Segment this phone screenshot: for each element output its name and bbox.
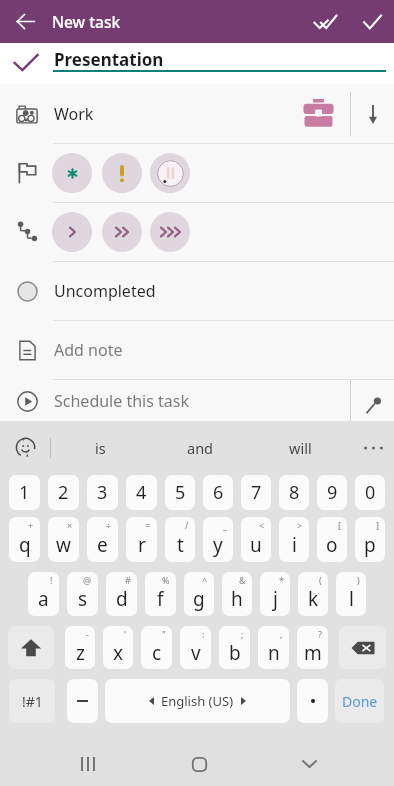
staticText: - bbox=[86, 628, 89, 640]
staticText: 6 bbox=[213, 480, 224, 505]
button[interactable]: Shift bbox=[8, 626, 54, 669]
staticText: k bbox=[308, 586, 319, 612]
staticText: 5 bbox=[175, 480, 186, 505]
button[interactable]: 0 bbox=[355, 475, 385, 510]
staticText: Uncompleted bbox=[54, 280, 156, 302]
button[interactable]: 6 bbox=[203, 475, 233, 510]
button[interactable]: : bbox=[180, 626, 211, 669]
button[interactable]: Complete all bbox=[303, 0, 347, 43]
button[interactable]: 2 bbox=[48, 475, 79, 510]
button[interactable]: , bbox=[258, 626, 289, 669]
button[interactable]: !#1 bbox=[9, 679, 55, 723]
button[interactable]: More suggestions bbox=[352, 421, 394, 474]
button[interactable]: 7 bbox=[241, 475, 271, 510]
staticText: 4 bbox=[136, 480, 147, 505]
button[interactable]: @ bbox=[67, 572, 98, 616]
button[interactable]: ' bbox=[103, 626, 133, 669]
button[interactable]: Progress level 3 bbox=[150, 212, 190, 252]
staticText: : bbox=[202, 628, 205, 640]
button[interactable]: * bbox=[260, 572, 290, 616]
staticText: o bbox=[326, 532, 338, 558]
button[interactable]: # bbox=[106, 572, 137, 616]
button[interactable]: > bbox=[279, 517, 309, 562]
button[interactable]: Home bbox=[169, 730, 229, 786]
button[interactable]: ; bbox=[219, 626, 250, 669]
staticText: u bbox=[250, 532, 262, 558]
button[interactable]: - bbox=[65, 626, 95, 669]
staticText: ( bbox=[319, 574, 322, 586]
button[interactable]: Recent apps bbox=[58, 730, 118, 786]
button[interactable]: [ bbox=[317, 517, 347, 562]
button[interactable]: Backspace bbox=[339, 626, 386, 669]
button[interactable]: Period bbox=[297, 679, 328, 723]
button[interactable]: Uncompleted bbox=[0, 262, 394, 320]
button[interactable]: 9 bbox=[317, 475, 347, 510]
button[interactable]: 3 bbox=[87, 475, 118, 510]
button[interactable]: ^ bbox=[184, 572, 214, 616]
button[interactable]: is bbox=[51, 421, 150, 474]
staticText: ! bbox=[50, 574, 53, 586]
staticText: ) bbox=[357, 574, 360, 586]
staticText: g bbox=[193, 586, 205, 612]
button[interactable]: will bbox=[250, 421, 350, 474]
button[interactable]: ÷ bbox=[87, 517, 118, 562]
button[interactable]: ] bbox=[355, 517, 385, 562]
staticText: 0 bbox=[365, 480, 376, 505]
button[interactable]: Done bbox=[335, 679, 384, 723]
staticText: > bbox=[297, 519, 303, 531]
button[interactable]: Back bbox=[6, 0, 44, 43]
staticText: Add note bbox=[54, 339, 123, 361]
staticText: l bbox=[349, 586, 354, 612]
staticText: r bbox=[138, 532, 146, 558]
button[interactable]: and bbox=[150, 421, 250, 474]
button[interactable]: = bbox=[126, 517, 157, 562]
button[interactable]: " bbox=[141, 626, 172, 669]
button[interactable]: + bbox=[9, 517, 40, 562]
button[interactable]: Space, English (US) bbox=[105, 679, 290, 723]
staticText: ' bbox=[124, 628, 127, 640]
button[interactable]: 1 bbox=[9, 475, 40, 510]
button[interactable]: Medium priority bbox=[102, 153, 142, 193]
button[interactable]: Low priority bbox=[52, 153, 92, 193]
staticText: t bbox=[177, 532, 184, 558]
staticText: a bbox=[38, 586, 49, 612]
staticText: Schedule this task bbox=[54, 390, 189, 412]
staticText: Work bbox=[54, 103, 94, 125]
button[interactable]: Work category icon bbox=[301, 98, 336, 130]
button[interactable]: Expand bbox=[351, 85, 394, 143]
button[interactable]: Add note bbox=[0, 321, 394, 379]
button[interactable]: Work bbox=[0, 85, 394, 143]
button[interactable]: Progress level 2 bbox=[102, 212, 142, 252]
staticText: New task bbox=[52, 11, 121, 32]
staticText: z bbox=[76, 640, 85, 666]
button[interactable]: Save bbox=[350, 0, 394, 43]
button[interactable]: _ bbox=[203, 517, 233, 562]
button[interactable]: / bbox=[165, 517, 195, 562]
staticText: ? bbox=[318, 628, 322, 640]
staticText: [ bbox=[338, 519, 341, 531]
button[interactable]: 8 bbox=[279, 475, 309, 510]
button[interactable]: ( bbox=[298, 572, 328, 616]
staticText: ; bbox=[241, 628, 244, 640]
button[interactable]: × bbox=[48, 517, 79, 562]
button[interactable]: Pin bbox=[350, 380, 394, 422]
button[interactable]: ) bbox=[336, 572, 366, 616]
button[interactable]: ! bbox=[28, 572, 59, 616]
button[interactable]: < bbox=[241, 517, 271, 562]
button[interactable]: Schedule this task bbox=[0, 380, 394, 422]
button[interactable]: % bbox=[145, 572, 176, 616]
staticText: ÷ bbox=[106, 519, 112, 531]
staticText: f bbox=[157, 586, 164, 612]
button[interactable]: Dash bbox=[67, 679, 98, 723]
button[interactable]: & bbox=[222, 572, 252, 616]
button[interactable]: Hide keyboard bbox=[279, 730, 339, 786]
staticText: m bbox=[304, 640, 322, 666]
staticText: w bbox=[56, 532, 71, 558]
button[interactable]: Emoji bbox=[0, 421, 50, 474]
button[interactable]: Mark complete bbox=[0, 43, 52, 84]
button[interactable]: ? bbox=[297, 626, 328, 669]
button[interactable]: 4 bbox=[126, 475, 157, 510]
button[interactable]: 5 bbox=[165, 475, 195, 510]
button[interactable]: Progress level 1 bbox=[52, 212, 92, 252]
button[interactable]: High priority bbox=[150, 153, 190, 193]
